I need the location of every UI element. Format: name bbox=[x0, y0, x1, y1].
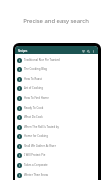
staticText: What Do Cook bbox=[24, 115, 43, 119]
staticText: Takes a Corporate bbox=[24, 163, 48, 167]
button[interactable]: The Cooking Blog bbox=[15, 64, 98, 74]
button[interactable]: Filter bbox=[82, 50, 85, 53]
button[interactable]: How To Find Home bbox=[15, 93, 98, 103]
staticText: Home for Cooking bbox=[24, 134, 49, 138]
staticText: Traditional Rice Pie Toasted bbox=[24, 58, 60, 62]
button[interactable]: Home for Cooking bbox=[15, 131, 98, 141]
button[interactable]: Winter Then Snow bbox=[15, 170, 98, 180]
button[interactable]: I Will Protect Pie bbox=[15, 150, 98, 160]
staticText: Art of Cooking bbox=[24, 86, 43, 90]
button[interactable]: Takes a Corporate bbox=[15, 160, 98, 170]
staticText: Winter Then Snow bbox=[24, 173, 48, 177]
button[interactable]: Ready To Cook bbox=[15, 103, 98, 113]
button[interactable]: Shall We Gather At River bbox=[15, 141, 98, 151]
staticText: I Will Protect Pie bbox=[24, 153, 46, 157]
button[interactable]: How To Roast bbox=[15, 74, 98, 84]
staticText: The Cooking Blog bbox=[24, 67, 48, 71]
staticText: Ready To Cook bbox=[24, 106, 44, 110]
button[interactable]: Traditional Rice Pie Toasted bbox=[15, 55, 98, 65]
button[interactable]: Art of Cooking bbox=[15, 83, 98, 93]
button[interactable]: More options bbox=[92, 50, 95, 53]
button[interactable]: What Do Cook bbox=[15, 112, 98, 122]
button[interactable]: Recipes bbox=[18, 49, 28, 53]
button[interactable]: Search bbox=[87, 50, 90, 53]
staticText: When The Roll Is Tasted by bbox=[24, 125, 59, 129]
staticText: Precise and easy search bbox=[0, 17, 112, 25]
staticText: How To Roast bbox=[24, 77, 42, 81]
staticText: How To Find Home bbox=[24, 96, 49, 100]
button[interactable]: When The Roll Is Tasted by bbox=[15, 122, 98, 132]
staticText: Shall We Gather At River bbox=[24, 144, 56, 148]
